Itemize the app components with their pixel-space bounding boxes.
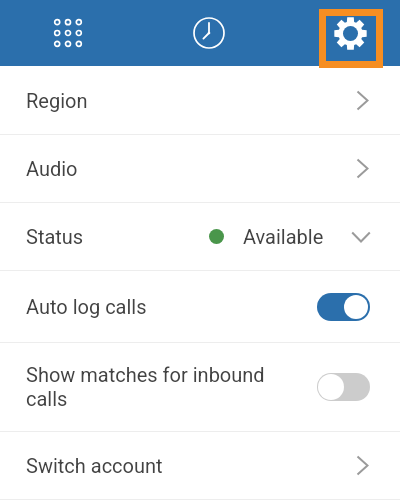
button[interactable]: Settings: [282, 0, 400, 66]
staticText: Status: [26, 225, 209, 248]
button[interactable]: Status: [0, 203, 400, 270]
staticText: Region: [26, 89, 356, 112]
button[interactable]: Audio: [0, 135, 400, 202]
button[interactable]: Auto log calls: [0, 271, 400, 342]
staticText: Available: [243, 225, 324, 248]
staticText: Auto log calls: [26, 295, 147, 318]
staticText: Audio: [26, 157, 356, 180]
button[interactable]: Show matches for inbound calls, off: [317, 373, 370, 401]
staticText: Show matches for inbound calls: [26, 363, 286, 411]
button[interactable]: Switch account: [0, 432, 400, 499]
button[interactable]: Show matches for inbound calls: [0, 343, 400, 431]
button[interactable]: Dial pad: [0, 0, 136, 66]
button[interactable]: Recent calls: [136, 0, 282, 66]
button[interactable]: Auto log calls, on: [317, 293, 370, 321]
staticText: Switch account: [26, 454, 356, 477]
button[interactable]: Region: [0, 66, 400, 134]
